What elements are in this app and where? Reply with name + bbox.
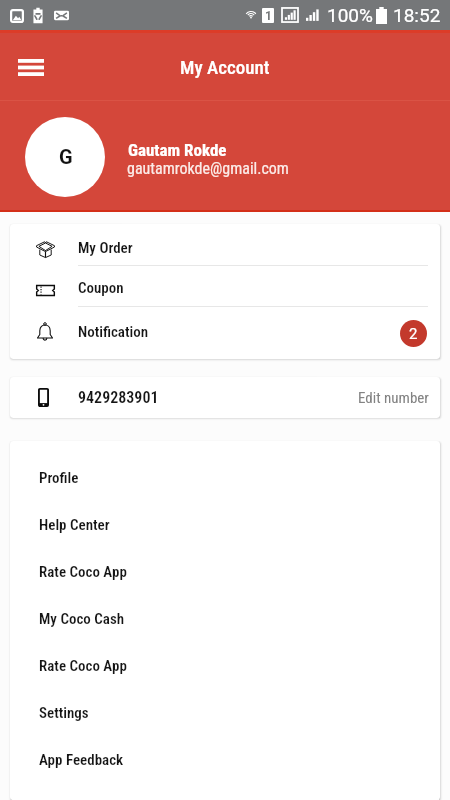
button[interactable]: Notification [10, 307, 440, 359]
button[interactable]: Open navigation menu [7, 43, 55, 91]
staticText: Coupon [78, 279, 124, 297]
staticText: Edit number [358, 389, 429, 407]
staticText: Rate Coco App [39, 563, 127, 581]
staticText: 9429283901 [78, 388, 159, 407]
staticText: Notification [78, 323, 149, 341]
button[interactable]: My Order [10, 224, 440, 266]
staticText: 100% [327, 4, 373, 26]
staticText: App Feedback [39, 751, 124, 769]
staticText: 18:52 [393, 4, 441, 26]
button[interactable]: App Feedback [10, 736, 440, 783]
button[interactable]: Profile [10, 454, 440, 501]
staticText: Help Center [39, 516, 110, 534]
staticText: My Account [180, 56, 270, 78]
staticText: Rate Coco App [39, 657, 127, 675]
staticText: Gautam Rokde [128, 140, 227, 160]
staticText: Settings [39, 704, 89, 722]
button[interactable]: 9429283901 [10, 377, 440, 418]
staticText: My Order [78, 239, 133, 257]
staticText: 1 [265, 9, 272, 23]
button[interactable]: Rate Coco App [10, 642, 440, 689]
staticText: My Coco Cash [39, 610, 125, 628]
staticText: 2 [409, 325, 418, 343]
staticText: G [59, 145, 73, 168]
button[interactable]: Help Center [10, 501, 440, 548]
staticText: Profile [39, 469, 79, 487]
staticText: gautamrokde@gmail.com [127, 159, 289, 178]
button[interactable]: Coupon [10, 266, 440, 307]
button[interactable]: Settings [10, 689, 440, 736]
button[interactable]: Rate Coco App [10, 548, 440, 595]
button[interactable]: My Coco Cash [10, 595, 440, 642]
